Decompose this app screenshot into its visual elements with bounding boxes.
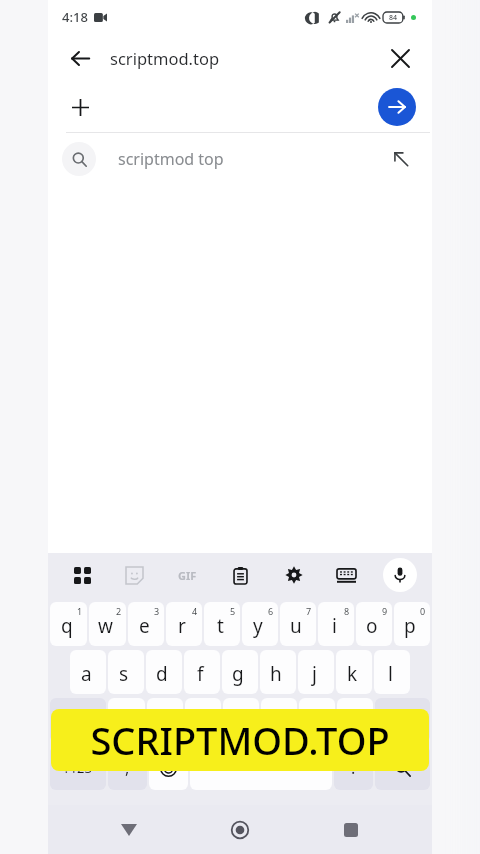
staticText: f: [197, 661, 204, 687]
button[interactable]: Comma: [108, 746, 147, 790]
staticText: a: [81, 661, 92, 687]
staticText: 4:18: [62, 8, 88, 26]
staticText: k: [347, 661, 358, 687]
button[interactable]: Home: [216, 806, 264, 854]
button[interactable]: n: [299, 698, 335, 742]
button[interactable]: Backspace: [375, 698, 430, 742]
button[interactable]: Stickers: [108, 553, 161, 597]
staticText: e: [139, 613, 150, 639]
button[interactable]: l: [374, 650, 410, 694]
button[interactable]: Emoji: [149, 746, 188, 790]
button[interactable]: Period: [334, 746, 373, 790]
staticText: u: [290, 613, 302, 639]
staticText: x: [158, 709, 169, 735]
staticText: 7: [306, 605, 312, 617]
button[interactable]: Shift: [50, 698, 106, 742]
staticText: t: [217, 613, 224, 639]
staticText: q: [61, 613, 73, 639]
button[interactable]: scriptmod top: [48, 133, 432, 185]
staticText: s: [119, 661, 129, 687]
staticText: c: [196, 709, 206, 735]
button[interactable]: y: [242, 602, 278, 646]
button[interactable]: m: [337, 698, 373, 742]
staticText: 6: [268, 605, 274, 617]
staticText: 1: [77, 605, 83, 617]
staticText: j: [312, 661, 317, 687]
button[interactable]: Voice input: [383, 558, 417, 592]
button[interactable]: u: [280, 602, 316, 646]
button[interactable]: e: [128, 602, 164, 646]
staticText: v: [234, 709, 244, 735]
button[interactable]: r: [166, 602, 202, 646]
button[interactable]: a: [70, 650, 106, 694]
button[interactable]: Space: [190, 746, 332, 790]
button[interactable]: Settings: [267, 553, 320, 597]
staticText: 5: [230, 605, 236, 617]
button[interactable]: Keyboard layout: [320, 553, 373, 597]
button[interactable]: Insert suggestion: [384, 142, 418, 176]
staticText: p: [404, 613, 416, 639]
staticText: 9: [382, 605, 388, 617]
button[interactable]: Clipboard: [214, 553, 267, 597]
staticText: 8: [344, 605, 350, 617]
button[interactable]: s: [108, 650, 144, 694]
button[interactable]: p: [394, 602, 430, 646]
button[interactable]: o: [356, 602, 392, 646]
button[interactable]: x: [147, 698, 183, 742]
button[interactable]: Clear: [378, 36, 422, 80]
button[interactable]: New tab: [58, 85, 102, 129]
button[interactable]: g: [222, 650, 258, 694]
button[interactable]: j: [298, 650, 334, 694]
button[interactable]: h: [260, 650, 296, 694]
staticText: GIF: [178, 568, 197, 583]
button[interactable]: b: [261, 698, 297, 742]
staticText: ,: [125, 757, 130, 779]
button[interactable]: Back: [58, 36, 102, 80]
button[interactable]: Go: [378, 88, 416, 126]
staticText: n: [309, 709, 321, 735]
staticText: ?123: [64, 759, 92, 777]
button[interactable]: Symbols: [50, 746, 106, 790]
button[interactable]: Recents: [327, 806, 375, 854]
staticText: z: [120, 709, 129, 735]
staticText: scriptmod.top: [110, 47, 378, 69]
button[interactable]: i: [318, 602, 354, 646]
staticText: l: [388, 661, 393, 687]
button[interactable]: v: [223, 698, 259, 742]
staticText: 3: [154, 605, 160, 617]
staticText: m: [344, 709, 362, 735]
button[interactable]: Back: [105, 806, 153, 854]
button[interactable]: GIF: [161, 553, 214, 597]
staticText: .: [351, 757, 356, 779]
staticText: 0: [420, 605, 426, 617]
button[interactable]: t: [204, 602, 240, 646]
staticText: 2: [116, 605, 122, 617]
staticText: 4: [192, 605, 198, 617]
button[interactable]: q: [50, 602, 87, 646]
button[interactable]: Apps: [56, 553, 108, 597]
button[interactable]: Search: [375, 746, 430, 790]
button[interactable]: k: [336, 650, 372, 694]
staticText: d: [156, 661, 168, 687]
button[interactable]: c: [185, 698, 221, 742]
staticText: y: [253, 613, 263, 639]
staticText: SCRIPTMOD.TOP: [90, 714, 390, 766]
button[interactable]: f: [184, 650, 220, 694]
staticText: scriptmod top: [118, 148, 384, 170]
staticText: b: [271, 709, 283, 735]
staticText: w: [98, 613, 113, 639]
button[interactable]: w: [89, 602, 126, 646]
staticText: o: [366, 613, 378, 639]
staticText: r: [178, 613, 186, 639]
button[interactable]: z: [108, 698, 145, 742]
button[interactable]: d: [146, 650, 182, 694]
staticText: g: [232, 661, 244, 687]
staticText: 84: [389, 13, 398, 23]
staticText: h: [270, 661, 282, 687]
staticText: i: [332, 613, 337, 639]
